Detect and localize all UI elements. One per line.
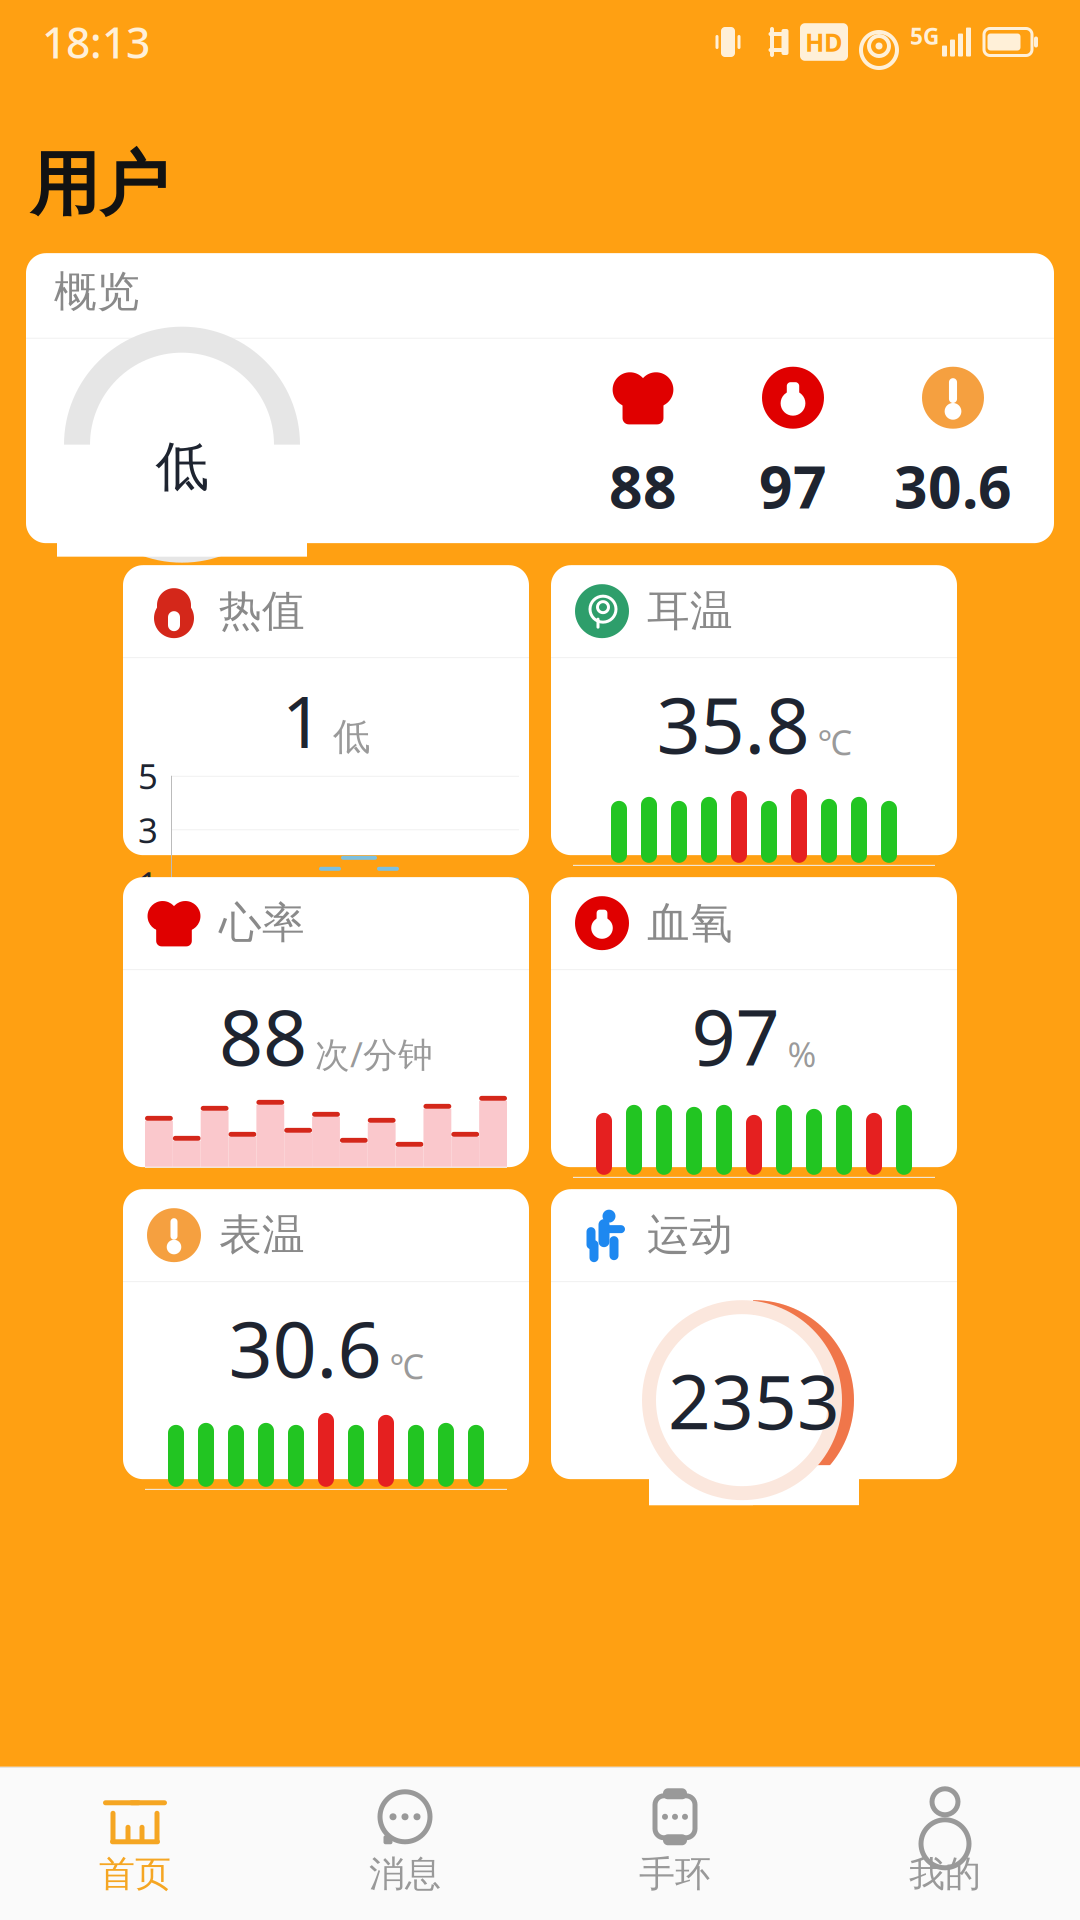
button[interactable]: 运动 [551, 1189, 957, 1479]
button[interactable]: 概览 [26, 253, 1054, 543]
staticText: HD [805, 25, 843, 59]
staticText: 97 [691, 984, 779, 1087]
staticText: 耳温 [647, 585, 733, 637]
staticText: 首页 [99, 1852, 171, 1896]
staticText: 30.6 [228, 1296, 381, 1399]
staticText: 3 [138, 807, 158, 853]
button[interactable]: 手环 [540, 1778, 810, 1906]
staticText: 低 [333, 714, 370, 760]
staticText: ℃ [389, 1343, 423, 1389]
button[interactable]: 首页 [0, 1778, 270, 1906]
staticText: 2353 [668, 1351, 840, 1450]
button[interactable]: 血氧 [551, 877, 957, 1167]
staticText: 热值 [219, 585, 305, 637]
staticText: 97 [759, 447, 827, 525]
staticText: 运动 [647, 1209, 733, 1261]
staticText: 手环 [639, 1852, 711, 1896]
staticText: 35.8 [656, 672, 809, 775]
staticText: 1 [282, 672, 323, 768]
staticText: 18:13 [42, 14, 150, 70]
button[interactable]: 心率 [123, 877, 529, 1167]
staticText: 88 [609, 447, 677, 525]
staticText: 88 [219, 984, 307, 1087]
staticText: 1 [138, 861, 158, 907]
staticText: ℃ [817, 719, 851, 765]
staticText: 心率 [219, 897, 305, 949]
staticText: 表温 [219, 1209, 305, 1261]
button[interactable]: 消息 [270, 1778, 540, 1906]
staticText: 概览 [54, 265, 140, 318]
staticText: 低 [155, 434, 208, 499]
staticText: % [787, 1031, 816, 1077]
button[interactable]: 耳温 [551, 565, 957, 855]
staticText: 5 [138, 753, 158, 799]
button[interactable]: 表温 [123, 1189, 529, 1479]
button[interactable]: 热值 [123, 565, 529, 855]
staticText: 30.6 [894, 447, 1012, 525]
staticText: 血氧 [647, 897, 733, 949]
staticText: 我的 [909, 1852, 981, 1896]
button[interactable]: 我的 [810, 1778, 1080, 1906]
staticText: 次/分钟 [315, 1031, 433, 1077]
staticText: 消息 [369, 1852, 441, 1896]
staticText: 用户 [30, 142, 168, 227]
staticText: 5G [910, 21, 939, 51]
